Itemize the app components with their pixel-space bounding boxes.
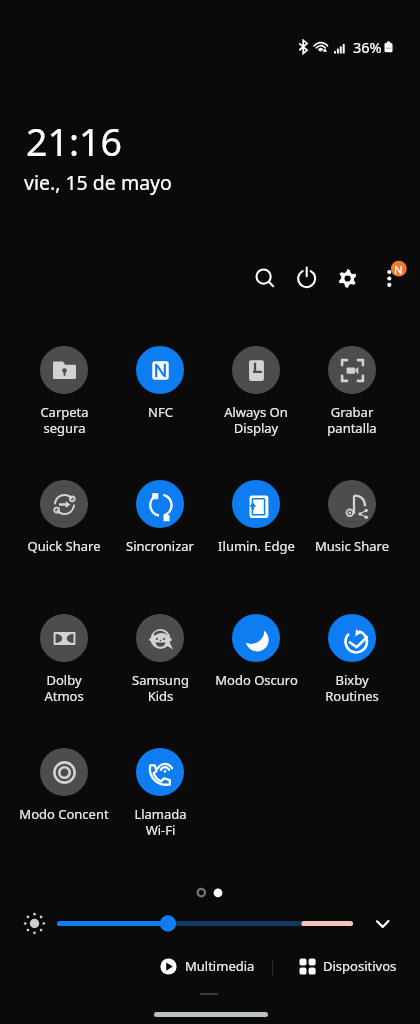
button[interactable]: Apagar <box>291 262 323 294</box>
button[interactable]: NFC <box>136 346 184 394</box>
button[interactable]: Music Share <box>328 480 376 528</box>
button[interactable]: Mas opciones <box>380 256 416 292</box>
button[interactable]: Sincronizar <box>136 480 184 528</box>
staticText: NFC <box>148 403 173 421</box>
button[interactable]: Brillo <box>21 910 48 937</box>
button[interactable]: Always On Display <box>232 346 280 394</box>
staticText: Multimedia <box>185 957 255 975</box>
staticText: Modo Oscuro <box>215 671 298 689</box>
staticText: Grabar pantalla <box>327 403 377 437</box>
button[interactable] <box>56 914 356 933</box>
button[interactable]: Buscar <box>248 261 280 293</box>
staticText: 36% <box>353 37 382 57</box>
staticText: N <box>394 262 403 278</box>
button[interactable]: Dolby Atmos <box>40 614 88 662</box>
button[interactable]: Modo Concentracion <box>40 748 88 796</box>
staticText: Always On Display <box>224 403 288 437</box>
button[interactable]: Bixby Routines <box>328 614 376 662</box>
staticText: Samsung Kids <box>132 671 189 705</box>
button[interactable]: Modo Oscuro <box>232 614 280 662</box>
button[interactable]: Dispositivos <box>294 952 402 980</box>
staticText: Quick Share <box>27 537 101 555</box>
button[interactable]: Ajustes <box>332 262 364 294</box>
button[interactable]: Multimedia <box>155 952 260 980</box>
button[interactable]: Carpeta segura <box>40 346 88 394</box>
button[interactable]: Expandir <box>370 911 396 937</box>
button[interactable]: Llamada Wi-Fi <box>136 748 184 796</box>
staticText: Sincronizar <box>126 537 194 555</box>
staticText: Music Share <box>315 537 389 555</box>
button[interactable]: Iluminacion Edge <box>232 480 280 528</box>
staticText: Ilumin. Edge <box>218 537 295 555</box>
button[interactable]: Grabar pantalla <box>328 346 376 394</box>
staticText: Carpeta segura <box>40 403 89 437</box>
staticText: Dispositivos <box>323 957 397 975</box>
staticText: vie., 15 de mayo <box>24 169 172 196</box>
staticText: Llamada Wi-Fi <box>134 805 187 839</box>
staticText: 21:16 <box>26 116 122 167</box>
staticText: Modo Concent <box>19 805 109 823</box>
staticText: Dolby Atmos <box>44 671 84 705</box>
button[interactable]: Samsung Kids <box>136 614 184 662</box>
button[interactable]: Quick Share <box>40 480 88 528</box>
staticText: Bixby Routines <box>325 671 379 705</box>
